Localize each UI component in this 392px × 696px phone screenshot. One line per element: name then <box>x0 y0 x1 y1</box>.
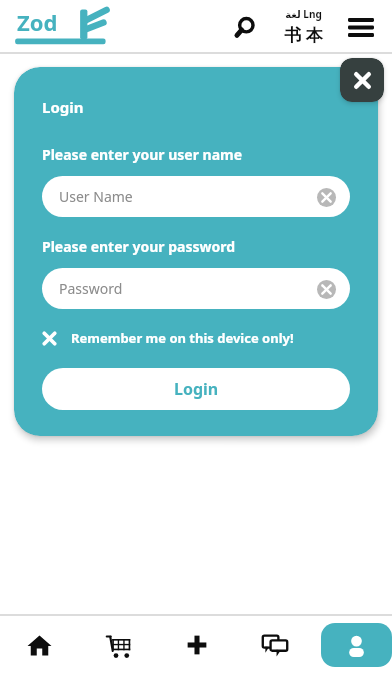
staticText: Please enter your user name <box>42 145 243 164</box>
button[interactable]: Cart <box>79 622 158 668</box>
staticText: لغة Lng <box>285 7 322 21</box>
button[interactable]: User Name <box>42 176 350 217</box>
button[interactable]: Clear User Name <box>313 184 339 210</box>
staticText: Please enter your password <box>42 237 236 256</box>
staticText: User Name <box>59 187 133 206</box>
staticText: Zod <box>17 7 58 37</box>
button[interactable]: Login <box>42 368 350 410</box>
staticText: Login <box>42 97 84 117</box>
button[interactable]: Close <box>340 58 384 102</box>
button[interactable]: Clear Password <box>313 276 339 302</box>
button[interactable]: Profile <box>321 623 392 667</box>
button[interactable]: Home <box>0 622 79 668</box>
button[interactable]: Add <box>158 622 236 668</box>
staticText: Remember me on this device only! <box>71 329 294 347</box>
button[interactable]: لغة Lng <box>272 3 334 51</box>
button[interactable]: Search <box>222 5 266 49</box>
button[interactable]: Zod home <box>12 5 116 49</box>
staticText: Password <box>59 279 123 298</box>
button[interactable]: Password <box>42 268 350 309</box>
button[interactable]: Menu <box>338 4 384 50</box>
button[interactable]: Remember me on this device only! <box>42 329 350 347</box>
staticText: 书 本 <box>284 23 323 46</box>
staticText: Login <box>174 378 219 400</box>
button[interactable]: Messages <box>236 622 314 668</box>
